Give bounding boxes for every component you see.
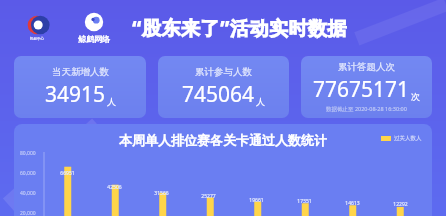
staticText: 17351 <box>297 198 312 205</box>
staticText: 投服中心 <box>30 37 44 41</box>
staticText: 人 <box>256 96 265 107</box>
staticText: 25277 <box>201 193 216 200</box>
staticText: 本周单人排位赛各关卡通过人数统计 <box>119 132 327 148</box>
button[interactable]: 累计参与人数 <box>158 56 289 118</box>
staticText: 42506 <box>107 184 122 191</box>
staticText: 14613 <box>345 200 360 207</box>
staticText: 累计参与人数 <box>195 66 252 78</box>
staticText: 31566 <box>154 190 169 197</box>
staticText: 鲸鹧网络 <box>78 34 110 44</box>
button[interactable]: 当天新增人数 <box>14 56 146 118</box>
button[interactable]: 投服中心 logo <box>22 13 52 43</box>
staticText: 当天新增人数 <box>52 66 109 78</box>
staticText: 80,000 <box>20 150 36 157</box>
staticText: 20,000 <box>20 210 36 216</box>
staticText: “股东来了”活动实时数据 <box>132 15 347 41</box>
staticText: 77675171 <box>313 75 410 104</box>
staticText: 过关人数人 <box>394 135 422 142</box>
staticText: 次 <box>411 91 420 102</box>
button[interactable]: 累计答题人次 <box>301 56 432 118</box>
staticText: 745064 <box>182 80 255 109</box>
staticText: 19661 <box>249 197 264 204</box>
staticText: 数据截止至 2020-08-28 16:30:00 <box>326 105 407 113</box>
staticText: 66951 <box>60 170 75 177</box>
staticText: 34915 <box>45 80 106 109</box>
staticText: 60,000 <box>20 170 36 177</box>
staticText: 人 <box>107 96 116 107</box>
staticText: 累计答题人次 <box>338 61 395 73</box>
button[interactable]: 鲸鹧网络 logo <box>78 12 110 44</box>
button[interactable]: 过关人数人 <box>381 135 422 142</box>
staticText: 40,000 <box>20 190 36 197</box>
staticText: 12292 <box>393 201 408 208</box>
